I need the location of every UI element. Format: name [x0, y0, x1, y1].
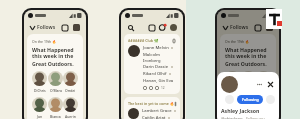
staticText: Omári — [65, 88, 76, 93]
staticText: Auerin — [65, 114, 76, 119]
staticText: Bianca — [243, 114, 254, 119]
button[interactable]: O'Mara — [48, 71, 63, 93]
button[interactable]: Mute — [266, 95, 275, 104]
button[interactable]: Notifications — [158, 23, 167, 32]
button[interactable]: On the 19th 🔥 — [220, 34, 276, 119]
staticText: DiChris — [227, 88, 239, 93]
button[interactable]: Compose — [253, 23, 262, 32]
staticText: Follows you — [246, 116, 265, 119]
button[interactable]: Message — [225, 95, 234, 104]
staticText: Joann Melvin — [143, 45, 169, 51]
button[interactable]: DiChris — [32, 71, 47, 93]
staticText: Jan — [230, 114, 236, 119]
button[interactable]: ####### Club 🌿 — [124, 34, 180, 94]
button[interactable]: Jan — [32, 97, 47, 119]
button[interactable]: Settings — [169, 23, 178, 32]
button[interactable]: Follows — [29, 23, 57, 32]
button[interactable]: Bianca — [241, 97, 256, 119]
button[interactable]: More — [255, 80, 264, 89]
staticText: Malcolm Ironberg — [143, 52, 176, 63]
staticText: What Happened this week in the — [32, 46, 78, 60]
button[interactable]: Follows — [222, 23, 250, 32]
staticText: Lambert Grace — [142, 108, 172, 114]
staticText: Great Outdoors. — [32, 60, 74, 67]
staticText: Rikard Olhif — [143, 71, 167, 77]
button[interactable]: Search — [126, 23, 135, 32]
button[interactable]: Omári — [63, 71, 78, 93]
staticText: On the 19th 🔥 — [225, 39, 250, 44]
staticText: @ohjackson — [221, 116, 243, 119]
staticText: ####### Club 🌿 — [128, 38, 159, 43]
button[interactable]: DiChris — [225, 71, 240, 93]
other: Threads logo — [266, 9, 282, 29]
staticText: Darin Dassie — [143, 64, 169, 70]
button[interactable]: Saved — [147, 23, 156, 32]
button[interactable]: The best in yet to come 🔥 — [124, 97, 180, 119]
staticText: Great Outdoors. — [225, 60, 267, 67]
staticText: What Happened this week in the — [225, 46, 271, 60]
staticText: Jan — [37, 114, 43, 119]
staticText: Caitlin Ariat — [142, 115, 166, 119]
button[interactable]: Jan — [225, 97, 240, 119]
button[interactable]: Profile — [265, 23, 274, 32]
staticText: Ashley Jackson — [221, 107, 260, 114]
staticText: The best in yet to come 🔥 — [128, 101, 175, 106]
button[interactable]: Following — [237, 95, 263, 104]
button[interactable]: O'Mara — [241, 71, 256, 93]
staticText: On the 19th 🔥 — [32, 39, 57, 44]
button[interactable]: Compose — [60, 23, 69, 32]
staticText: Following — [242, 97, 259, 102]
staticText: 12 — [161, 86, 165, 90]
button[interactable]: Profile — [72, 23, 81, 32]
button[interactable]: Bianca — [48, 97, 63, 119]
button[interactable]: Omári — [256, 71, 271, 93]
staticText: Follows — [230, 24, 249, 31]
staticText: DiChris — [34, 88, 46, 93]
button[interactable]: Auerin — [63, 97, 78, 119]
staticText: Auerin — [258, 114, 269, 119]
staticText: Follows — [37, 24, 56, 31]
button[interactable]: Close — [266, 80, 275, 89]
staticText: O'Mara — [50, 88, 62, 93]
button[interactable]: Auerin — [256, 97, 271, 119]
button[interactable]: On the 19th 🔥 — [27, 34, 83, 119]
staticText: Hanan, Gin Eva — [143, 78, 174, 84]
staticText: Bianca — [50, 114, 61, 119]
